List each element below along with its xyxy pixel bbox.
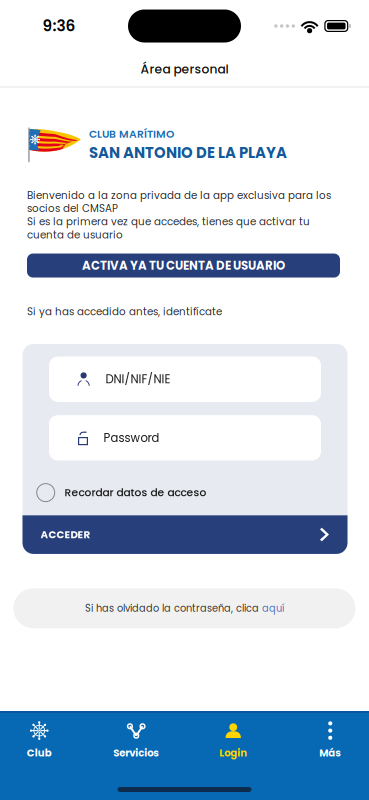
staticText: Si has olvidado la contraseña, clica [85,601,262,615]
staticText: CLUB MARÍTIMO [89,126,174,141]
staticText: Login [219,746,247,760]
staticText: ACCEDER [40,527,90,542]
staticText: Área personal [140,61,228,78]
staticText: aquí [262,601,284,615]
button[interactable]: Recordar datos de acceso [22,470,347,515]
staticText: cuenta de usuario [27,228,123,242]
staticText: socios del CMSAP [27,201,118,216]
staticText: 9:36 [42,15,75,37]
staticText: ACTIVA YA TU CUENTA DE USUARIO [82,257,285,274]
staticText: Si es la primera vez que accedes, tienes… [27,214,310,229]
button[interactable]: Password [49,415,321,460]
button[interactable]: ACCEDER [22,515,347,554]
staticText: Servicios [113,746,159,760]
button[interactable]: ACTIVA YA TU CUENTA DE USUARIO [27,253,340,277]
button[interactable]: DNI/NIF/NIE [49,356,321,402]
staticText: Si ya has accedido antes, identifícate [27,304,222,319]
button[interactable]: Login [200,713,266,773]
button[interactable]: Si has olvidado la contraseña, clica [13,588,355,628]
staticText: DNI/NIF/NIE [106,371,171,387]
button[interactable]: Más [297,713,363,773]
staticText: Más [319,746,341,760]
button[interactable]: Club [6,713,72,773]
staticText: Bienvenido a la zona privada de la app e… [27,188,331,203]
staticText: SAN ANTONIO DE LA PLAYA [89,142,287,163]
button[interactable]: Servicios [103,713,169,773]
staticText: Password [104,430,160,446]
staticText: Recordar datos de acceso [65,485,207,500]
staticText: Club [27,746,52,760]
